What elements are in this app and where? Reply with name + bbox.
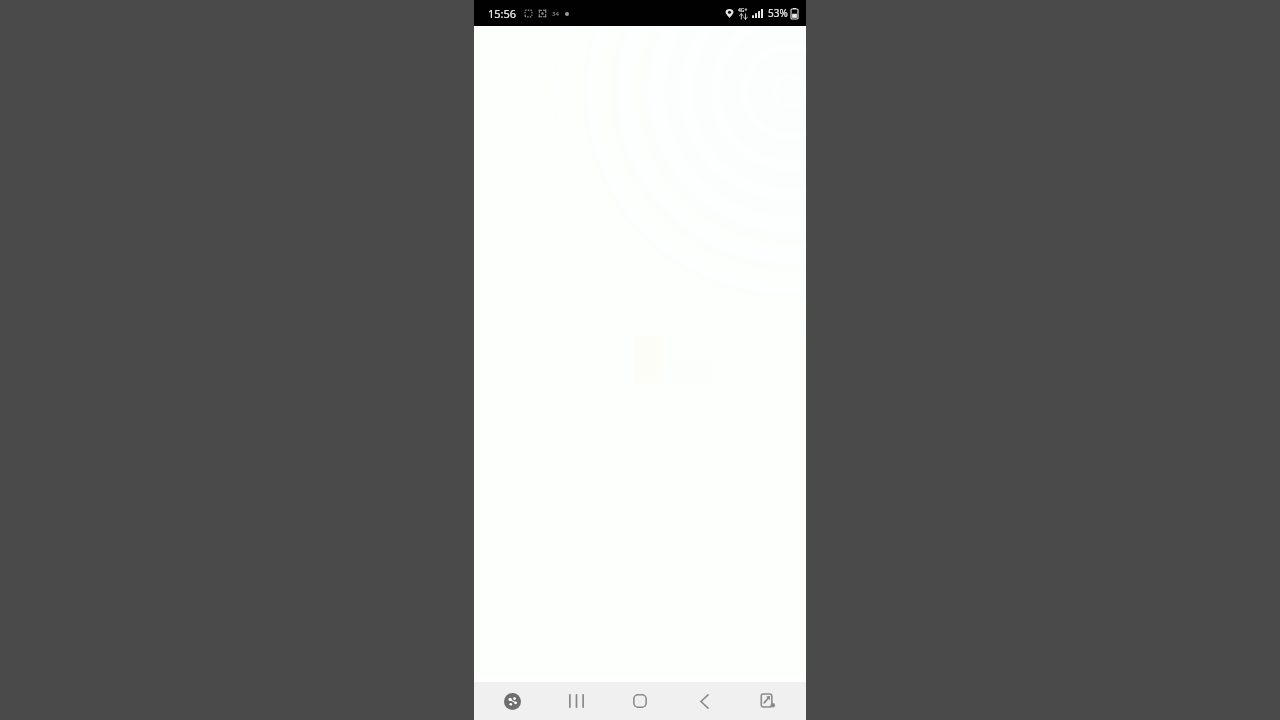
button[interactable]: Recent apps <box>544 682 608 720</box>
staticText: 15:56 <box>488 6 517 21</box>
button[interactable]: Back <box>672 682 736 720</box>
button[interactable]: Game booster <box>480 682 544 720</box>
staticText: 4G+ <box>738 7 748 14</box>
staticText: 34 <box>552 10 559 18</box>
button[interactable]: Screenshot <box>736 682 800 720</box>
button[interactable]: Home <box>608 682 672 720</box>
staticText: 53% <box>768 6 788 20</box>
